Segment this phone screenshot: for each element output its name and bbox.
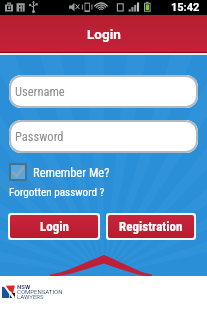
staticText: NSW — [17, 283, 31, 290]
button[interactable]: Forgotten password ? — [9, 186, 105, 199]
button[interactable]: Remember Me checkbox — [9, 163, 110, 181]
button[interactable]: Username — [9, 75, 198, 108]
staticText: 15:42 — [171, 1, 200, 14]
staticText: Remember Me? — [33, 165, 110, 180]
button[interactable]: Registration — [108, 215, 194, 238]
other: Remember Me checkbox — [9, 163, 27, 181]
staticText: Password — [15, 129, 64, 144]
staticText: Username — [15, 84, 65, 99]
button[interactable]: Login — [10, 215, 98, 238]
staticText: Login — [40, 219, 69, 234]
staticText: LAWYERS — [17, 293, 44, 300]
button[interactable]: Password — [9, 120, 198, 153]
staticText: COMPENSATION — [17, 288, 63, 295]
staticText: Registration — [119, 219, 183, 234]
staticText: Login — [87, 26, 121, 42]
